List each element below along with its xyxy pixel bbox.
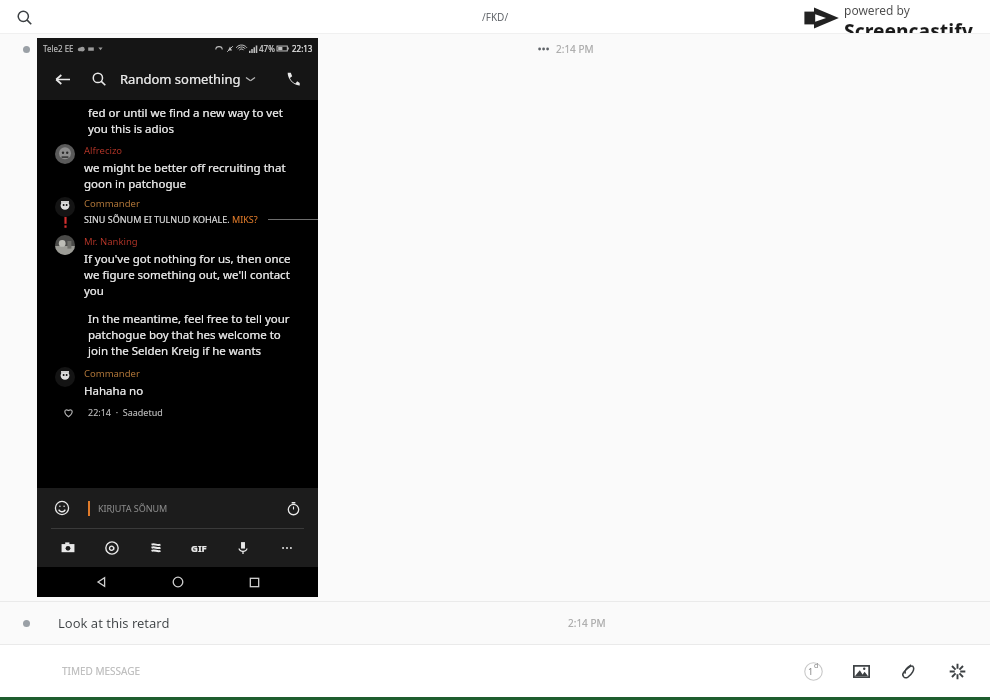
button[interactable]: Search conversation	[87, 67, 111, 91]
staticText: Mr. Nanking	[84, 235, 138, 248]
button[interactable]: Profile picture	[55, 367, 75, 387]
staticText: 22:14 · Saadetud	[88, 406, 163, 418]
staticText: 2:14 PM	[556, 42, 594, 56]
staticText: Hahaha no	[84, 383, 144, 399]
staticText: 2:14 PM	[568, 616, 606, 630]
staticText: patchogue boy that hes welcome to	[88, 327, 281, 343]
button[interactable]: Profile picture	[37, 197, 318, 228]
button[interactable]: Profile picture	[55, 197, 75, 217]
button[interactable]: Timed message	[282, 497, 304, 519]
staticText: we figure something out, we'll contact	[84, 267, 290, 283]
staticText: Commander	[84, 367, 140, 380]
staticText: Alfrecizo	[84, 144, 123, 157]
button[interactable]: Look at this retard	[0, 601, 990, 645]
button[interactable]: Tele2 EE	[37, 38, 318, 597]
staticText: we might be better off recruiting that	[84, 160, 286, 176]
button[interactable]: Recents	[241, 569, 267, 595]
staticText: If you've got nothing for us, then once	[84, 251, 291, 267]
staticText: Tele2 EE	[43, 43, 74, 54]
button[interactable]: Camera	[55, 535, 81, 561]
staticText: SINU SÕNUM EI TULNUD KOHALE.	[84, 213, 232, 225]
staticText: Random something	[120, 70, 241, 88]
staticText: 1	[808, 665, 814, 677]
staticText: In the meantime, feel free to tell your	[88, 311, 290, 327]
button[interactable]: Call	[280, 66, 306, 92]
staticText: fed or until we find a new way to vet	[88, 105, 283, 121]
button[interactable]: KIRJUTA SÕNUM	[98, 502, 282, 514]
staticText: Screencastify	[844, 18, 974, 34]
staticText: 22:13	[292, 43, 313, 54]
button[interactable]: Profile picture	[37, 235, 318, 299]
button[interactable]: Back	[49, 66, 75, 92]
staticText: powered by	[844, 2, 910, 18]
staticText: /FKD/	[482, 10, 509, 24]
button[interactable]: Message timer 1 day	[798, 656, 828, 686]
button[interactable]: Profile picture	[37, 144, 318, 192]
staticText: you this is adios	[88, 121, 175, 137]
button[interactable]: Like	[59, 403, 77, 421]
staticText: Look at this retard	[58, 614, 568, 632]
button[interactable]: Search	[8, 1, 40, 33]
staticText: d	[814, 661, 819, 671]
button[interactable]: Effects	[942, 656, 972, 686]
staticText: join the Selden Kreig if he wants	[88, 343, 262, 359]
button[interactable]: Profile picture	[37, 367, 318, 399]
staticText: MIKS?	[232, 213, 258, 225]
button[interactable]: Profile picture	[55, 144, 75, 164]
button[interactable]: Attach file	[894, 656, 924, 686]
button[interactable]: Stickers	[143, 535, 169, 561]
button[interactable]: GIF	[186, 535, 212, 561]
button[interactable]: Home	[165, 569, 191, 595]
button[interactable]: TIMED MESSAGE	[62, 664, 798, 678]
staticText: goon in patchogue	[84, 176, 187, 192]
button[interactable]: Back	[88, 569, 114, 595]
button[interactable]: Insert image	[846, 656, 876, 686]
staticText: 47%	[259, 43, 275, 54]
button[interactable]: More options	[274, 535, 300, 561]
button[interactable]: Emoji	[51, 497, 73, 519]
staticText: Commander	[84, 197, 140, 210]
button[interactable]: Voice message	[230, 535, 256, 561]
staticText: GIF	[191, 542, 207, 555]
button[interactable]: Profile picture	[55, 235, 75, 255]
staticText: you	[84, 283, 104, 299]
button[interactable]: Mention	[99, 535, 125, 561]
button[interactable]: Random something	[120, 70, 280, 88]
